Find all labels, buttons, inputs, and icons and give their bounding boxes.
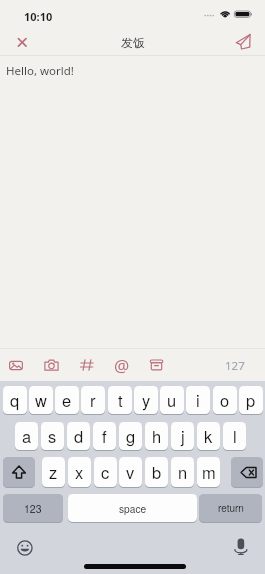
button[interactable]: b [145, 457, 168, 487]
staticText: t [118, 388, 123, 412]
button[interactable]: Send [230, 26, 260, 56]
staticText: o [220, 388, 230, 412]
staticText: v [126, 460, 135, 484]
button[interactable]: m [197, 457, 220, 487]
staticText: n [178, 460, 188, 484]
button[interactable]: Emoji [13, 536, 37, 560]
button[interactable]: Voice input [229, 536, 253, 560]
button[interactable]: t [108, 386, 132, 414]
button[interactable]: o [213, 386, 237, 414]
staticText: s [48, 424, 57, 448]
button[interactable]: x [68, 457, 91, 487]
staticText: h [152, 424, 162, 448]
staticText: u [167, 388, 177, 412]
staticText: z [49, 460, 58, 484]
button[interactable]: y [134, 386, 158, 414]
button[interactable]: g [119, 422, 142, 450]
staticText: p [246, 388, 256, 412]
button[interactable]: n [171, 457, 194, 487]
staticText: e [62, 388, 72, 412]
button[interactable]: z [42, 457, 65, 487]
button[interactable]: l [223, 422, 246, 450]
button[interactable]: d [67, 422, 90, 450]
staticText: 10:10 [24, 9, 53, 24]
staticText: l [233, 424, 237, 448]
button[interactable]: e [55, 386, 79, 414]
staticText: c [101, 460, 110, 484]
button[interactable]: Photo [4, 355, 28, 376]
staticText: g [126, 424, 136, 448]
staticText: w [35, 388, 47, 412]
staticText: 123 [24, 501, 42, 516]
button[interactable]: h [145, 422, 168, 450]
button[interactable]: c [94, 457, 117, 487]
button[interactable]: s [41, 422, 64, 450]
staticText: k [204, 424, 213, 448]
staticText: @ [114, 354, 130, 377]
button[interactable]: f [93, 422, 116, 450]
button[interactable]: a [15, 422, 38, 450]
button[interactable]: Hashtag [75, 354, 99, 376]
staticText: i [196, 388, 200, 412]
button[interactable]: Shift [3, 457, 35, 487]
staticText: 127 [225, 358, 245, 374]
button[interactable]: k [197, 422, 220, 450]
button[interactable]: return [199, 494, 262, 522]
staticText: x [75, 460, 84, 484]
staticText: d [74, 424, 84, 448]
staticText: m [202, 460, 216, 484]
button[interactable]: w [29, 386, 53, 414]
button[interactable]: Camera [39, 354, 64, 376]
staticText: a [22, 424, 32, 448]
button[interactable]: j [171, 422, 194, 450]
staticText: f [102, 424, 107, 448]
button[interactable]: Mention [110, 353, 134, 377]
staticText: b [152, 460, 162, 484]
button[interactable]: Backspace [231, 457, 263, 487]
staticText: return [218, 501, 244, 515]
button[interactable]: p [239, 386, 263, 414]
button[interactable]: u [160, 386, 184, 414]
staticText: Hello, world! [6, 63, 74, 79]
staticText: r [90, 388, 96, 412]
staticText: q [10, 388, 20, 412]
staticText: j [181, 424, 185, 448]
button[interactable]: Close [6, 26, 38, 58]
staticText: y [142, 388, 151, 412]
staticText: space [119, 501, 147, 516]
button[interactable]: i [186, 386, 210, 414]
button[interactable]: q [3, 386, 27, 414]
staticText: 发饭 [121, 35, 145, 50]
button[interactable]: Archive [145, 354, 168, 376]
button[interactable]: v [119, 457, 142, 487]
button[interactable]: r [81, 386, 105, 414]
button[interactable]: 123 [3, 494, 63, 522]
button[interactable]: space [68, 494, 197, 522]
